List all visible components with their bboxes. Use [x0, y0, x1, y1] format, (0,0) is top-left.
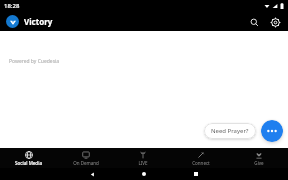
staticText: Victory	[24, 16, 53, 27]
button[interactable]: LIVE	[114, 148, 172, 168]
button[interactable]: Social Media	[0, 148, 57, 168]
button[interactable]: Home	[139, 169, 149, 179]
staticText: LIVE	[138, 160, 148, 166]
button[interactable]: Connect	[172, 148, 230, 168]
button[interactable]: Need Prayer?	[204, 123, 256, 139]
button[interactable]: Back	[87, 169, 97, 179]
button[interactable]: Settings	[268, 15, 282, 29]
button[interactable]: Search	[247, 15, 261, 29]
button[interactable]: More options	[261, 120, 283, 142]
staticText: Social Media	[15, 160, 42, 166]
staticText: Connect	[192, 160, 210, 166]
button[interactable]: Recent apps	[191, 169, 201, 179]
staticText: Powered by Cuedesia	[9, 58, 60, 65]
staticText: Need Prayer?	[211, 127, 249, 135]
button[interactable]: Give	[230, 148, 288, 168]
button[interactable]: On Demand	[57, 148, 114, 168]
staticText: 18:28	[4, 2, 20, 10]
staticText: Give	[254, 160, 264, 166]
staticText: On Demand	[73, 160, 99, 166]
